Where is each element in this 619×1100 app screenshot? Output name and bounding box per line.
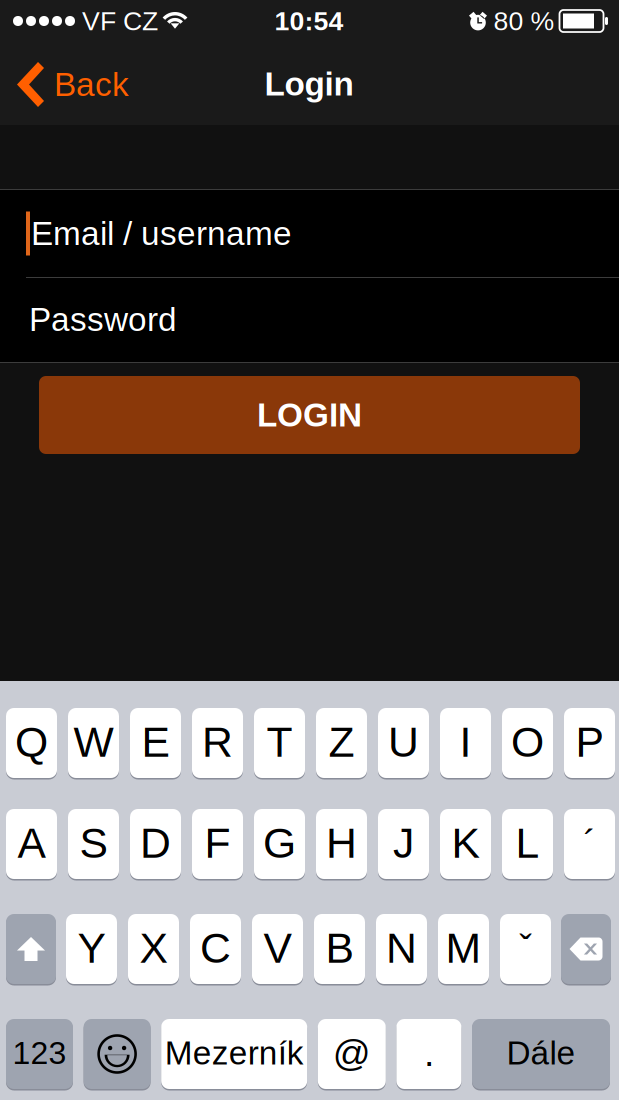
staticText: Dále xyxy=(506,1034,575,1072)
staticText: G xyxy=(263,819,296,867)
button[interactable]: N xyxy=(376,913,427,985)
button[interactable]: LOGIN xyxy=(39,376,580,454)
staticText: . xyxy=(424,1032,434,1074)
staticText: X xyxy=(139,924,167,972)
staticText: V xyxy=(263,924,291,972)
button[interactable]: F xyxy=(192,808,243,880)
button[interactable]: Mezerník xyxy=(161,1018,307,1090)
staticText: J xyxy=(393,819,414,867)
button[interactable]: O xyxy=(502,707,553,779)
staticText: W xyxy=(73,718,113,766)
staticText: K xyxy=(451,819,479,867)
button[interactable]: W xyxy=(68,707,119,779)
staticText: B xyxy=(325,924,353,972)
staticText: Y xyxy=(77,924,105,972)
staticText: Email / username xyxy=(31,215,292,252)
button[interactable]: Z xyxy=(316,707,367,779)
button[interactable]: J xyxy=(378,808,429,880)
staticText: VF CZ xyxy=(82,6,158,36)
button[interactable]: @ xyxy=(318,1018,386,1090)
staticText: Login xyxy=(264,65,353,103)
button[interactable]: Dále xyxy=(472,1018,610,1090)
staticText: I xyxy=(459,718,471,766)
staticText: L xyxy=(515,819,539,867)
button[interactable]: K xyxy=(440,808,491,880)
staticText: D xyxy=(140,819,171,867)
button[interactable]: M xyxy=(438,913,489,985)
staticText: ˇ xyxy=(519,927,531,969)
staticText: O xyxy=(511,718,544,766)
staticText: ´ xyxy=(583,822,595,864)
staticText: P xyxy=(575,718,603,766)
button[interactable]: 123 xyxy=(6,1018,73,1090)
staticText: Z xyxy=(328,718,354,766)
button[interactable]: Delete xyxy=(561,913,611,985)
button[interactable]: Q xyxy=(6,707,57,779)
button[interactable]: H xyxy=(316,808,367,880)
button[interactable]: Email / username xyxy=(0,190,619,277)
staticText: Q xyxy=(15,718,48,766)
button[interactable]: Back xyxy=(0,44,160,125)
button[interactable]: R xyxy=(192,707,243,779)
button[interactable]: B xyxy=(314,913,365,985)
button[interactable]: Password xyxy=(0,277,619,362)
button[interactable]: U xyxy=(378,707,429,779)
button[interactable]: Y xyxy=(66,913,117,985)
staticText: @ xyxy=(333,1032,371,1074)
staticText: N xyxy=(386,924,417,972)
staticText: LOGIN xyxy=(257,396,362,434)
button[interactable]: A xyxy=(6,808,57,880)
staticText: Password xyxy=(29,301,177,338)
staticText: U xyxy=(388,718,419,766)
staticText: 10:54 xyxy=(274,6,343,36)
button[interactable]: Emoji keyboard xyxy=(84,1018,151,1090)
staticText: H xyxy=(326,819,357,867)
button[interactable]: X xyxy=(128,913,179,985)
button[interactable]: E xyxy=(130,707,181,779)
staticText: 80 % xyxy=(493,6,554,36)
button[interactable]: L xyxy=(502,808,553,880)
button[interactable]: G xyxy=(254,808,305,880)
button[interactable]: V xyxy=(252,913,303,985)
staticText: F xyxy=(204,819,230,867)
button[interactable]: ´ xyxy=(564,808,615,880)
staticText: E xyxy=(141,718,169,766)
staticText: R xyxy=(202,718,233,766)
staticText: M xyxy=(445,924,481,972)
button[interactable]: T xyxy=(254,707,305,779)
button[interactable]: . xyxy=(396,1018,461,1090)
staticText: Mezerník xyxy=(165,1034,304,1072)
staticText: S xyxy=(79,819,107,867)
button[interactable]: I xyxy=(440,707,491,779)
button[interactable]: Shift xyxy=(6,913,56,985)
button[interactable]: P xyxy=(564,707,615,779)
button[interactable]: D xyxy=(130,808,181,880)
button[interactable]: ˇ xyxy=(500,913,551,985)
staticText: C xyxy=(200,924,231,972)
button[interactable]: C xyxy=(190,913,241,985)
staticText: Back xyxy=(54,66,129,103)
staticText: 123 xyxy=(12,1035,66,1071)
staticText: T xyxy=(266,718,292,766)
button[interactable]: S xyxy=(68,808,119,880)
staticText: A xyxy=(17,819,45,867)
